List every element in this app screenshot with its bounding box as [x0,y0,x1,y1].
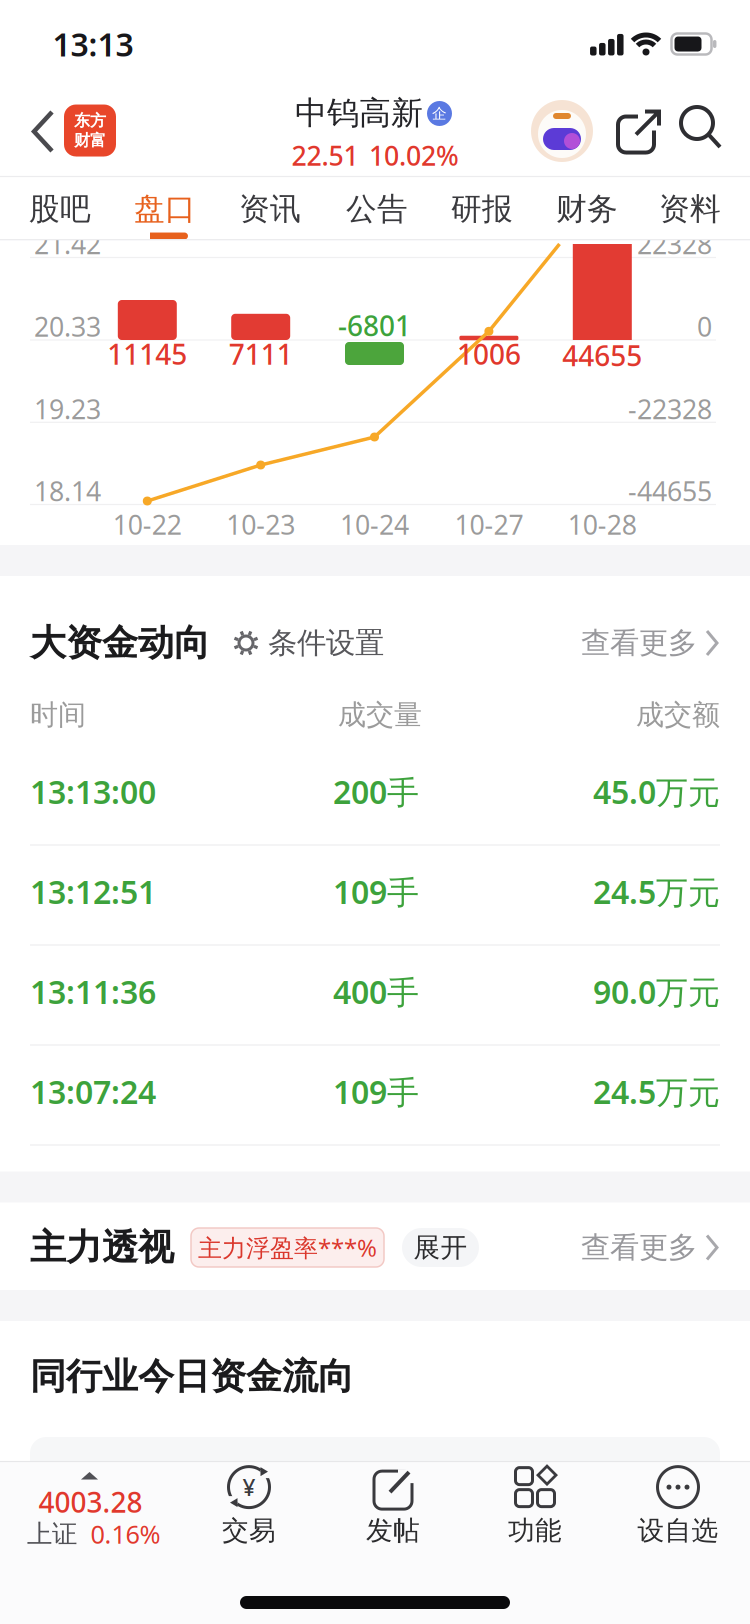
staticText: 44655 [562,337,642,374]
button[interactable]: 13:12:51 [0,0,750,1624]
staticText: 设自选 [637,1514,718,1547]
button[interactable] [616,106,664,154]
staticText: 10-28 [568,507,637,542]
staticText: 交易 [222,1514,276,1547]
button[interactable]: 13:13:00 [0,0,750,1624]
staticText: 大资金动向 [30,621,210,665]
staticText: 24.5万元 [593,870,720,913]
staticText: -22328 [628,391,712,426]
button[interactable]: 盘口 [134,190,196,228]
staticText: 19.23 [34,391,101,426]
staticText: 4003.28 [38,1483,142,1521]
staticText: 股吧 [29,190,91,228]
staticText: 11145 [107,335,187,373]
staticText: 财富 [74,130,106,150]
button[interactable] [531,100,593,162]
staticText: 45.0万元 [593,770,720,813]
staticText: -44655 [628,473,712,509]
staticText: 成交额 [636,698,720,732]
staticText: 200手 [333,770,419,813]
button[interactable]: 股吧 [29,190,91,228]
staticText: 成交量 [338,698,422,732]
staticText: 400手 [333,970,419,1013]
staticText: 18.14 [34,473,101,509]
staticText: 10-24 [340,507,409,542]
staticText: 资料 [659,190,721,228]
staticText: 上证 [27,1518,77,1549]
staticText: 研报 [451,190,513,228]
staticText: 财务 [556,190,618,228]
button[interactable]: 财务 [556,190,618,228]
staticText: 13:13:00 [30,770,156,813]
button[interactable]: 查看更多 [581,625,719,661]
staticText: 10-22 [113,507,182,542]
staticText: 功能 [508,1514,562,1547]
button[interactable]: 设自选 [637,1465,718,1547]
staticText: 22328 [637,226,712,262]
staticText: 90.0万元 [593,970,720,1013]
button[interactable]: 研报 [451,190,513,228]
button[interactable]: 功能 [508,1465,562,1547]
staticText: 中钨高新 [295,93,423,133]
button[interactable]: 资讯 [239,190,301,228]
staticText: 同行业今日资金流向 [30,1354,354,1399]
staticText: 13:07:24 [30,1070,156,1113]
staticText: 13:12:51 [30,870,156,913]
staticText: 东方 [74,111,106,130]
staticText: 查看更多 [581,625,697,661]
staticText: 盘口 [134,190,196,228]
staticText: 0 [697,309,712,344]
button[interactable]: 资料 [659,190,721,228]
staticText: 20.33 [34,309,101,344]
staticText: 10.02% [369,138,459,173]
staticText: 时间 [30,698,86,732]
staticText: 主力浮盈率***% [198,1232,377,1263]
staticText: -6801 [338,307,411,344]
button[interactable]: 13:11:36 [0,0,750,1624]
staticText: 条件设置 [268,625,384,661]
staticText: 企 [432,104,447,122]
staticText: 主力透视 [30,1225,174,1270]
staticText: 21.42 [34,226,101,262]
staticText: 7111 [229,335,293,373]
staticText: ¥ [242,1472,255,1502]
staticText: 公告 [346,190,408,228]
staticText: 10-23 [226,507,295,542]
staticText: 13:11:36 [30,970,156,1013]
button[interactable]: 展开 [402,1228,479,1267]
button[interactable]: 发帖 [366,1465,420,1547]
button[interactable]: 条件设置 [232,625,384,661]
staticText: 0.16% [90,1517,160,1551]
button[interactable]: ¥ [222,1465,276,1547]
staticText: 109手 [333,1070,419,1113]
staticText: 10-27 [454,507,523,542]
button[interactable]: 查看更多 [581,1229,719,1265]
staticText: 资讯 [239,190,301,228]
staticText: 109手 [333,870,419,913]
staticText: 发帖 [366,1514,420,1547]
button[interactable] [680,106,724,152]
staticText: 展开 [413,1231,467,1264]
button[interactable]: 公告 [346,190,408,228]
button[interactable] [29,109,57,154]
button[interactable]: 东方 [64,104,116,156]
staticText: 1006 [457,335,521,373]
staticText: 24.5万元 [593,1070,720,1113]
staticText: 13:13 [52,23,133,65]
staticText: 22.51 [291,138,358,173]
button[interactable]: 4003.28 [15,1463,185,1551]
button[interactable]: 13:07:24 [0,0,750,1624]
button[interactable]: 主力浮盈率***% [191,1228,384,1267]
staticText: 查看更多 [581,1229,697,1265]
